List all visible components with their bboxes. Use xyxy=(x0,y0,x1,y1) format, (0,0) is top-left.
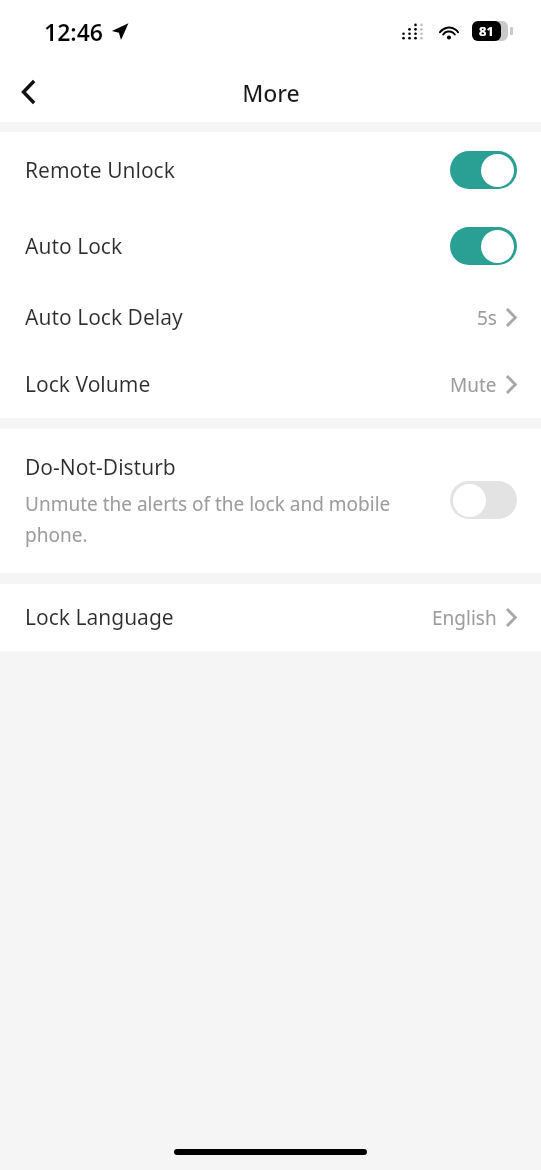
button[interactable]: Off xyxy=(450,481,517,519)
button[interactable]: On xyxy=(450,151,517,189)
button[interactable]: Back xyxy=(0,64,56,120)
staticText: Auto Lock xyxy=(25,232,450,261)
button[interactable]: Auto Lock Delay xyxy=(0,284,541,351)
staticText: Do-Not-Disturb xyxy=(25,453,176,482)
button[interactable]: Lock Language xyxy=(0,584,541,651)
button[interactable]: Auto Lock xyxy=(0,208,541,284)
staticText: Mute xyxy=(450,372,497,398)
button[interactable]: Lock Volume xyxy=(0,351,541,418)
staticText: Unmute the alerts of the lock and mobile… xyxy=(25,491,432,547)
staticText: 12:46 xyxy=(44,16,103,47)
button[interactable]: Do-Not-Disturb xyxy=(0,429,541,573)
staticText: 81 xyxy=(479,22,494,40)
button[interactable]: On xyxy=(450,227,517,265)
button[interactable]: Remote Unlock xyxy=(0,132,541,208)
staticText: Remote Unlock xyxy=(25,156,450,185)
staticText: Auto Lock Delay xyxy=(25,303,477,332)
staticText: Lock Language xyxy=(25,603,432,632)
staticText: 5s xyxy=(477,305,497,331)
staticText: More xyxy=(242,77,300,108)
staticText: English xyxy=(432,605,497,631)
staticText: Lock Volume xyxy=(25,370,450,399)
